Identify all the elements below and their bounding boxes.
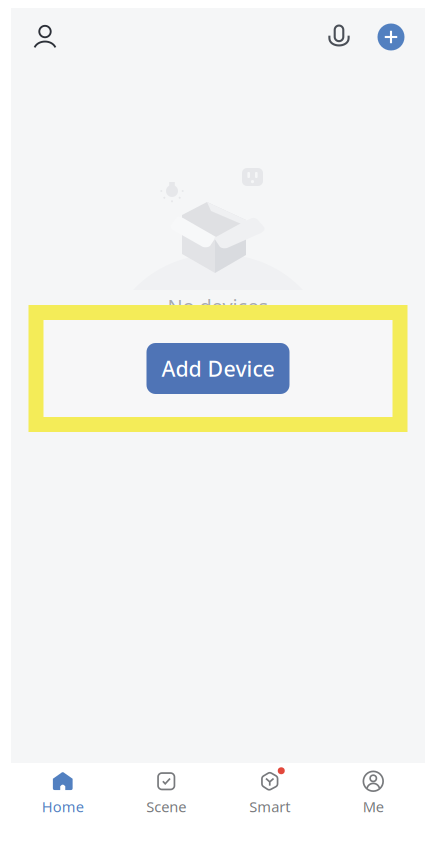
button[interactable]: Smart (218, 764, 321, 844)
staticText: Add Device (161, 354, 274, 383)
button[interactable]: Scene (114, 764, 218, 844)
staticText: Home (42, 797, 84, 816)
button[interactable]: Add (371, 15, 411, 59)
staticText: Scene (146, 797, 186, 816)
staticText: Smart (249, 797, 290, 816)
button[interactable]: Voice control (319, 15, 359, 59)
button[interactable]: Add Device (146, 343, 289, 394)
button[interactable]: Home (11, 764, 114, 844)
staticText: No devices (167, 293, 268, 320)
button[interactable]: Profile (23, 15, 67, 59)
button[interactable]: Me (321, 764, 425, 844)
staticText: Me (363, 797, 384, 816)
